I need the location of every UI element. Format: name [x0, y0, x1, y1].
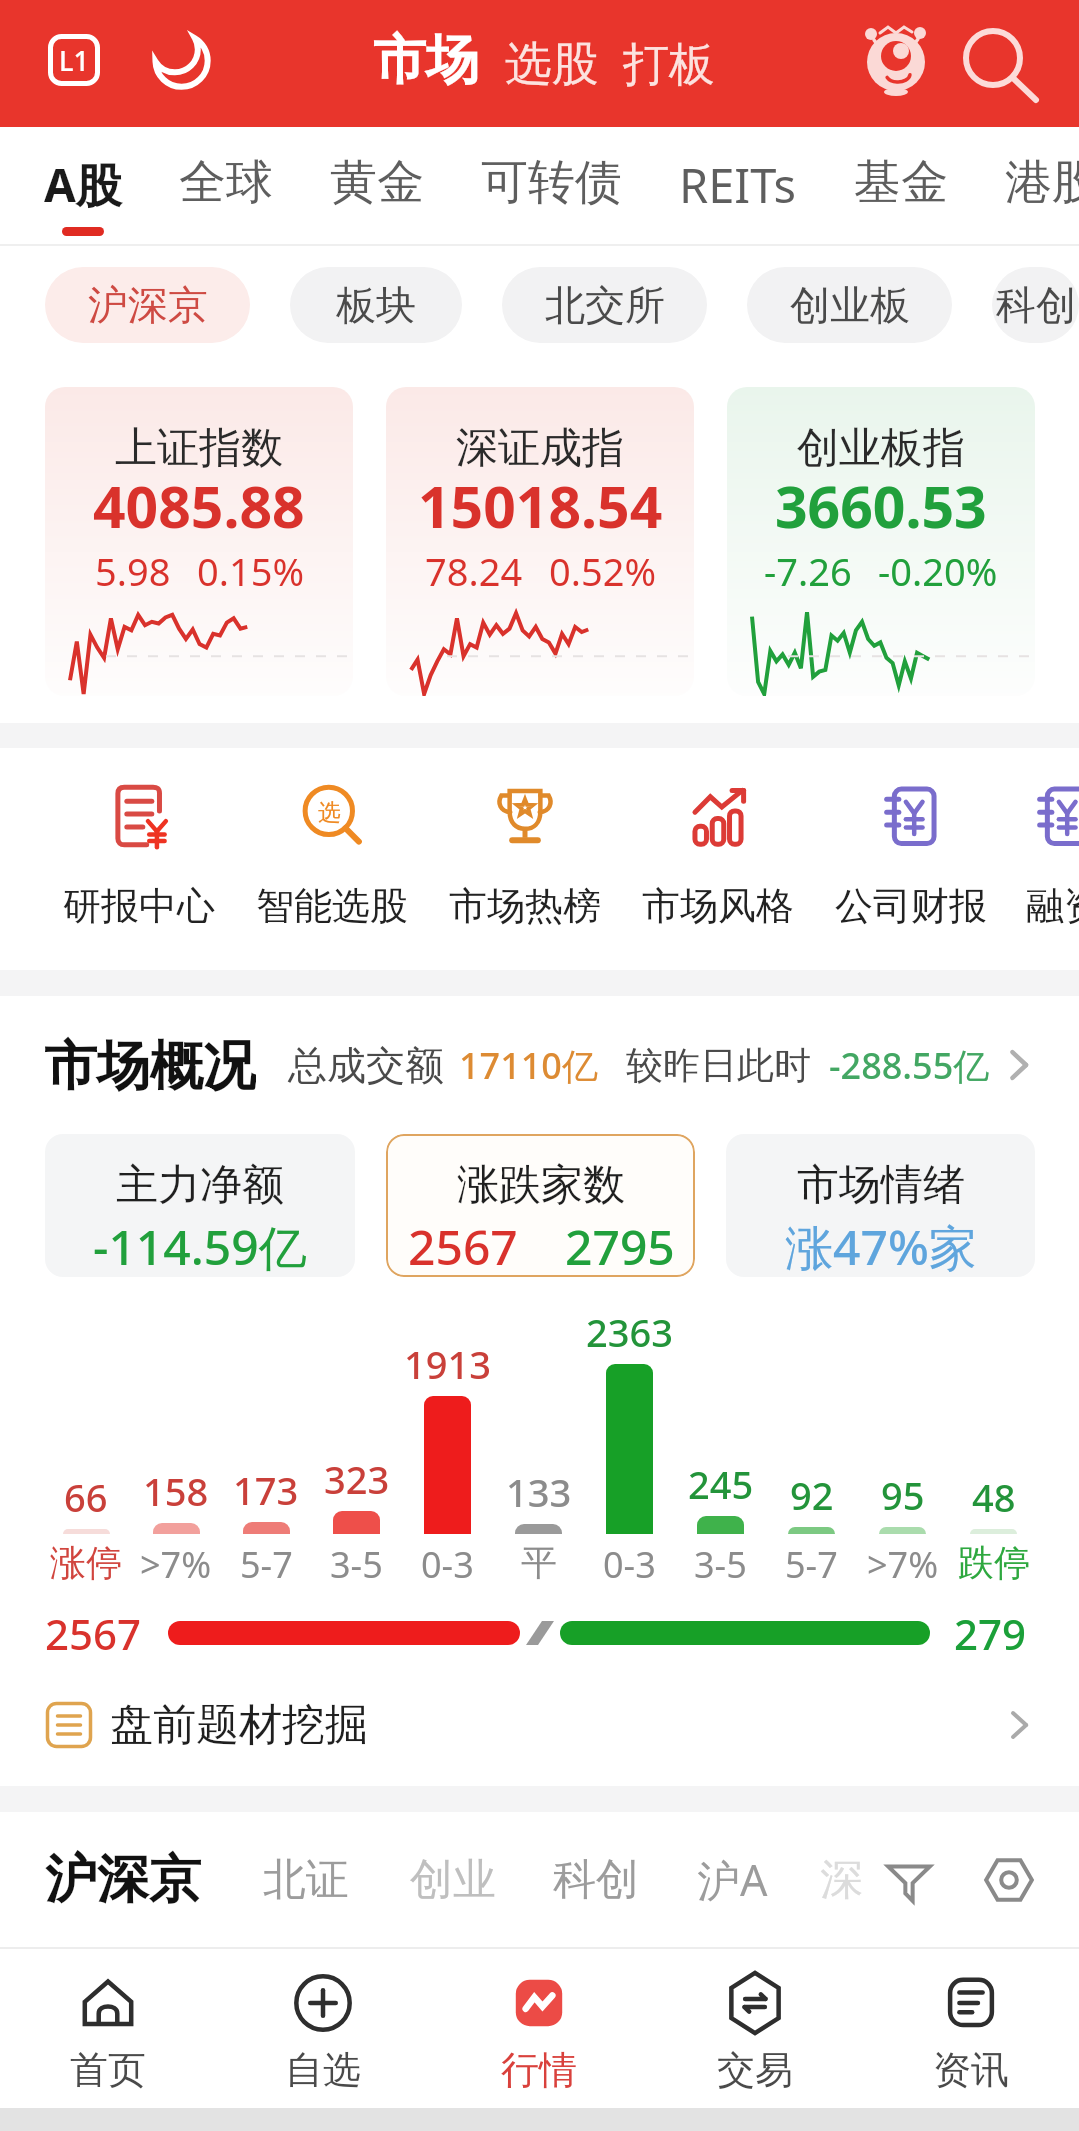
staticText: 市场概况 [44, 1033, 256, 1097]
staticText: -288.55亿 [829, 1041, 990, 1090]
staticText: 涨停 [50, 1540, 122, 1585]
button[interactable]: 沪A [697, 1850, 768, 1909]
staticText: 245 [688, 1458, 754, 1510]
staticText: 66 [64, 1471, 108, 1523]
button[interactable]: 基金 [854, 153, 948, 223]
staticText: 创业板指 [797, 422, 965, 475]
button[interactable]: 涨跌家数 [386, 1134, 695, 1277]
button[interactable]: 首页 [0, 1949, 215, 2108]
staticText: 基金 [854, 153, 948, 212]
staticText: 市场风格 [642, 882, 794, 930]
button[interactable]: 行情 [431, 1949, 647, 2108]
button[interactable]: 沪深京 [45, 1847, 201, 1913]
button[interactable]: 公司财报 [814, 784, 1007, 930]
staticText: 平 [521, 1540, 557, 1585]
button[interactable]: Level 1 quotes [48, 34, 100, 86]
button[interactable]: 融资 [1007, 784, 1079, 930]
staticText: 涨47%家 [785, 1214, 977, 1277]
staticText: 融资 [1026, 882, 1079, 930]
staticText: 总成交额 [288, 1041, 444, 1090]
button[interactable]: 黄金 [330, 153, 424, 223]
button[interactable]: 上证指数 [45, 387, 353, 696]
staticText: 首页 [70, 2046, 146, 2094]
staticText: 港股 [1005, 153, 1079, 212]
staticText: 0.52% [549, 545, 656, 597]
button[interactable]: 自选 [215, 1949, 431, 2108]
staticText: A股 [44, 153, 122, 216]
button[interactable]: REITs [679, 153, 797, 228]
staticText: 公司财报 [835, 882, 987, 930]
button[interactable]: 科创 [553, 1853, 639, 1907]
button[interactable]: 全球 [179, 153, 273, 223]
staticText: 2567 [408, 1214, 518, 1277]
staticText: 3-5 [694, 1540, 747, 1589]
staticText: REITs [679, 153, 797, 217]
button[interactable]: 研报中心 [42, 784, 235, 930]
button[interactable]: Search [960, 26, 1042, 108]
staticText: 3-5 [330, 1540, 383, 1589]
staticText: 行情 [501, 2046, 577, 2094]
staticText: 158 [143, 1465, 209, 1517]
button[interactable]: 可转债 [481, 153, 622, 223]
button[interactable]: Settings [979, 1850, 1039, 1910]
button[interactable]: 创业板 [747, 267, 952, 343]
staticText: 173 [233, 1464, 299, 1516]
button[interactable]: 北证 [263, 1853, 349, 1907]
button[interactable]: 科创 [992, 267, 1079, 343]
staticText: 研报中心 [63, 882, 215, 930]
staticText: 5-7 [785, 1540, 838, 1589]
button[interactable]: 沪深京 [45, 267, 250, 343]
staticText: L1 [59, 42, 89, 79]
staticText: 智能选股 [256, 882, 408, 930]
staticText: 5.98 [95, 545, 171, 597]
staticText: 科创 [996, 280, 1076, 330]
staticText: 4085.88 [93, 467, 305, 545]
button[interactable]: 市场 [373, 27, 479, 94]
button[interactable]: AI assistant [857, 24, 935, 102]
staticText: -114.59亿 [93, 1214, 307, 1277]
staticText: 0.15% [197, 545, 304, 597]
staticText: 2795 [954, 1605, 1035, 1661]
button[interactable]: 选 [235, 784, 428, 930]
button[interactable]: 选股 [505, 35, 599, 94]
button[interactable]: 创业 [410, 1853, 496, 1907]
button[interactable]: 深证成指 [386, 387, 694, 696]
button[interactable]: 市场风格 [621, 784, 814, 930]
staticText: 创业板 [790, 280, 910, 330]
staticText: 跌停 [958, 1540, 1030, 1585]
staticText: 涨跌家数 [457, 1159, 625, 1212]
staticText: 盘前题材挖掘 [110, 1698, 368, 1752]
button[interactable]: 市场情绪 [726, 1134, 1035, 1277]
button[interactable]: 市场热榜 [428, 784, 621, 930]
button[interactable]: 深 [820, 1853, 863, 1907]
staticText: 0-3 [603, 1540, 656, 1589]
staticText: 市场情绪 [797, 1159, 965, 1212]
button[interactable]: 交易 [647, 1949, 863, 2108]
button[interactable]: 盘前题材挖掘 [45, 1673, 1039, 1777]
button[interactable]: 北交所 [502, 267, 707, 343]
staticText: 全球 [179, 153, 273, 212]
button[interactable]: Night mode [152, 30, 210, 88]
staticText: -0.20% [878, 545, 998, 597]
staticText: 上证指数 [115, 422, 283, 475]
button[interactable]: 创业板指 [727, 387, 1035, 696]
button[interactable]: 港股 [1005, 153, 1079, 223]
staticText: 15018.54 [418, 467, 663, 545]
staticText: 深证成指 [456, 422, 624, 475]
button[interactable]: 打板 [623, 36, 715, 94]
staticText: 黄金 [330, 153, 424, 212]
button[interactable]: Filter [879, 1850, 939, 1910]
staticText: 323 [324, 1453, 390, 1505]
staticText: 0-3 [421, 1540, 474, 1589]
button[interactable]: 资讯 [863, 1949, 1079, 2108]
button[interactable]: 市场概况 [44, 1033, 1039, 1097]
button[interactable]: 主力净额 [45, 1134, 355, 1277]
staticText: >7% [140, 1540, 212, 1589]
staticText: >7% [867, 1540, 939, 1589]
staticText: 选 [318, 798, 341, 827]
button[interactable]: 板块 [290, 267, 462, 343]
staticText: 2795 [565, 1214, 675, 1277]
staticText: 可转债 [481, 153, 622, 212]
button[interactable]: A股 [44, 153, 122, 236]
staticText: 95 [881, 1469, 925, 1521]
